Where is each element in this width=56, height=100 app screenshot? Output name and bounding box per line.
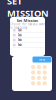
staticText: Next (39, 58, 45, 61)
button[interactable] (37, 70, 41, 75)
staticText: SET MISSION (7, 0, 49, 19)
staticText: Task (18, 28, 22, 32)
button[interactable] (37, 81, 41, 85)
staticText: Choose the task you want to track today (10, 22, 45, 30)
button[interactable]: Task (10, 38, 45, 43)
button[interactable]: Task (10, 43, 45, 48)
button[interactable] (31, 81, 35, 85)
staticText: Task (18, 43, 22, 47)
button[interactable] (31, 76, 35, 80)
button[interactable] (43, 65, 47, 69)
button[interactable] (37, 65, 41, 69)
button[interactable]: Task (10, 33, 45, 38)
button[interactable] (43, 76, 47, 80)
button[interactable]: Next (32, 56, 51, 62)
button[interactable] (43, 81, 47, 85)
button[interactable] (31, 70, 35, 75)
staticText: Set Mission (16, 18, 38, 23)
button[interactable] (31, 65, 35, 69)
staticText: Task (18, 38, 22, 42)
button[interactable]: Task (10, 28, 45, 33)
button[interactable] (37, 76, 41, 80)
button[interactable] (43, 70, 47, 75)
staticText: Task (18, 33, 22, 37)
